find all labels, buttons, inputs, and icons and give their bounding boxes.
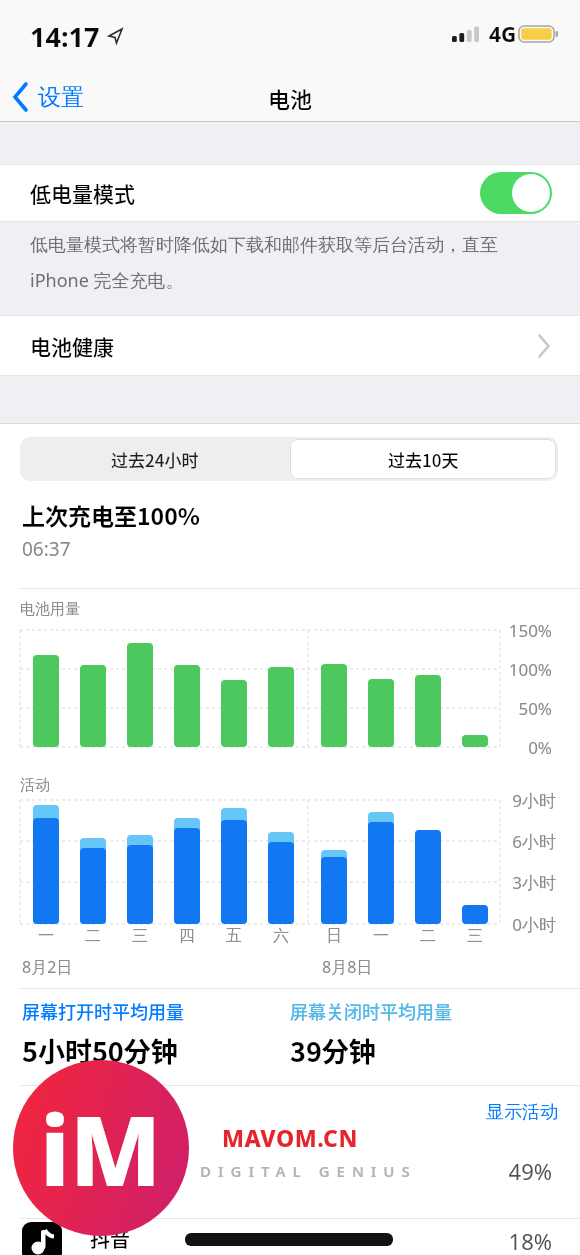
staticText: 6小时	[462, 830, 556, 853]
staticText: 一	[31, 926, 61, 946]
staticText: 三	[125, 926, 155, 946]
button[interactable]: 过去24小时	[20, 437, 289, 481]
staticText: 日	[319, 926, 349, 946]
staticText: 电池健康	[30, 331, 114, 361]
staticText: 上次充电至100%	[22, 498, 200, 531]
staticText: 二	[413, 926, 443, 946]
staticText: iM	[40, 1083, 162, 1214]
staticText: 低电量模式	[30, 178, 135, 208]
button[interactable]: 低电量模式	[0, 164, 580, 222]
staticText: 8月8日	[322, 956, 373, 978]
staticText: MAVOM.CN	[222, 1122, 358, 1153]
staticText: 三	[460, 926, 490, 946]
button[interactable]: 设置	[12, 82, 84, 112]
staticText: 五	[219, 926, 249, 946]
staticText: 屏幕打开时平均用量	[22, 998, 184, 1024]
staticText: 电池	[268, 82, 313, 114]
staticText: 屏幕关闭时平均用量	[290, 998, 452, 1024]
staticText: 电池用量	[20, 600, 80, 619]
staticText: 低电量模式将暂时降低如下载和邮件获取等后台活动，直至 iPhone 完全充电。	[30, 234, 498, 292]
staticText: 二	[78, 926, 108, 946]
staticText: 14:17	[30, 18, 100, 55]
staticText: 过去24小时	[111, 447, 199, 472]
staticText: 一	[366, 926, 396, 946]
staticText: 0%	[462, 736, 552, 759]
button[interactable]: 电池健康	[0, 315, 580, 376]
staticText: 过去10天	[388, 447, 459, 472]
staticText: 活动	[20, 776, 50, 795]
staticText: 3小时	[462, 871, 556, 894]
staticText: 49%	[460, 1156, 552, 1186]
staticText: 抖音	[90, 1224, 130, 1253]
staticText: 9小时	[462, 789, 556, 812]
staticText: 06:37	[22, 536, 71, 562]
button[interactable]	[0, 1218, 580, 1255]
button[interactable]: 过去10天	[290, 439, 556, 479]
staticText: 四	[172, 926, 202, 946]
staticText: 150%	[462, 619, 552, 642]
staticText: 5小时50分钟	[22, 1031, 178, 1070]
staticText: 39分钟	[290, 1031, 376, 1070]
staticText: 18%	[460, 1226, 552, 1255]
staticText: 4G	[489, 20, 517, 49]
staticText: 100%	[462, 658, 552, 681]
staticText: 0小时	[462, 913, 556, 936]
staticText: 8月2日	[22, 956, 73, 978]
button[interactable]: 显示活动	[460, 1101, 558, 1124]
staticText: 设置	[38, 83, 84, 112]
staticText: 六	[266, 926, 296, 946]
staticText: DIGITAL GENIUS	[200, 1161, 417, 1181]
staticText: 50%	[462, 697, 552, 720]
